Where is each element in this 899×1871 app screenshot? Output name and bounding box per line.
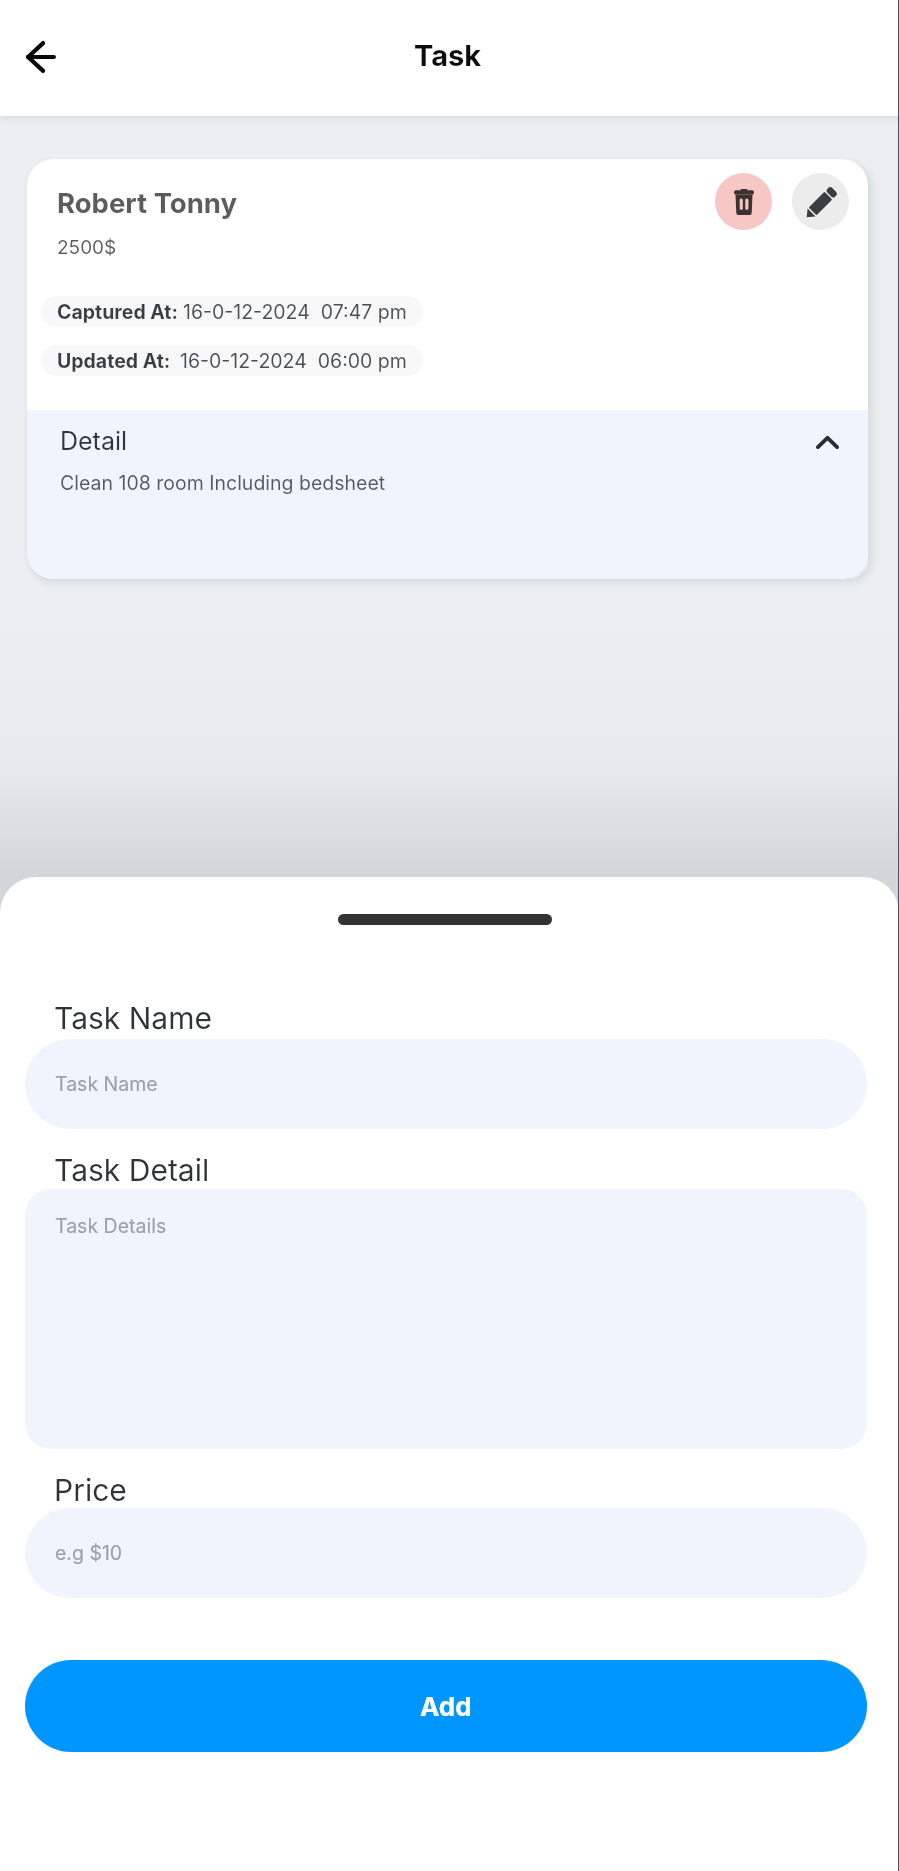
staticText: 16-0-12-2024 06:00 pm: [180, 349, 407, 373]
staticText: Robert Tonny: [57, 186, 238, 219]
staticText: Captured At:: [57, 300, 183, 324]
staticText: 2500$: [57, 236, 117, 259]
staticText: Detail: [60, 426, 128, 456]
staticText: Add: [420, 1691, 472, 1722]
button[interactable]: Task Name: [25, 1039, 867, 1129]
staticText: Task Details: [55, 1214, 167, 1238]
staticText: Updated At:: [57, 349, 180, 373]
staticText: Clean 108 room Including bedsheet: [60, 471, 386, 495]
button[interactable]: Delete: [715, 173, 772, 230]
staticText: Price: [54, 1472, 127, 1508]
staticText: Task: [414, 38, 482, 73]
button[interactable]: Collapse detail: [801, 416, 853, 468]
staticText: 16-0-12-2024 07:47 pm: [183, 300, 407, 324]
button[interactable]: Task Details: [25, 1189, 867, 1449]
staticText: e.g $10: [55, 1541, 123, 1565]
staticText: Task Detail: [54, 1152, 210, 1188]
staticText: Task Name: [55, 1072, 158, 1096]
button[interactable]: Edit: [792, 173, 849, 230]
staticText: Task Name: [54, 1000, 212, 1036]
button[interactable]: Back: [13, 29, 69, 85]
button[interactable]: Add: [25, 1660, 867, 1752]
button[interactable]: e.g $10: [25, 1508, 867, 1598]
